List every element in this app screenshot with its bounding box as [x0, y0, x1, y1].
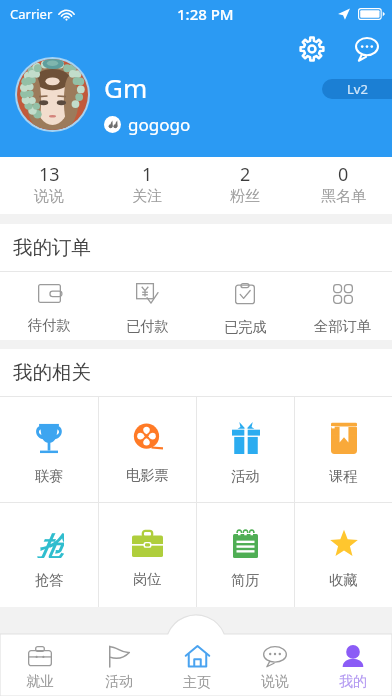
button[interactable]: 2	[196, 157, 294, 214]
button[interactable]: 抢	[0, 503, 98, 607]
staticText: 就业	[26, 673, 54, 691]
button[interactable]: Messages	[346, 28, 388, 70]
staticText: 活动	[105, 673, 133, 691]
button[interactable]: 主页	[158, 634, 236, 696]
button[interactable]: 待付款	[0, 272, 98, 340]
staticText: 说说	[261, 673, 289, 691]
staticText: 我的相关	[13, 360, 91, 385]
staticText: 已付款	[126, 317, 169, 335]
button[interactable]: 联赛	[0, 397, 98, 502]
staticText: 1:28 PM	[177, 4, 234, 24]
staticText: Gm	[104, 70, 148, 105]
staticText: 关注	[132, 187, 162, 206]
staticText: 主页	[183, 674, 211, 692]
staticText: 1	[142, 162, 153, 187]
staticText: 13	[39, 162, 60, 187]
button[interactable]: 活动	[197, 397, 294, 502]
staticText: 简历	[231, 571, 260, 589]
button[interactable]: 0	[294, 157, 392, 214]
staticText: 岗位	[133, 570, 162, 588]
button[interactable]: 就业	[0, 634, 79, 696]
staticText: 说说	[34, 187, 64, 206]
staticText: 课程	[329, 467, 358, 485]
staticText: 已完成	[224, 318, 267, 336]
button[interactable]: 电影票	[99, 397, 196, 502]
staticText: Carrier	[10, 5, 53, 23]
button[interactable]: Lv2	[322, 79, 392, 99]
staticText: Lv2	[347, 80, 368, 98]
button[interactable]: 活动	[79, 634, 158, 696]
staticText: 抢答	[35, 571, 64, 589]
staticText: 活动	[231, 467, 260, 485]
button[interactable]: 岗位	[99, 503, 196, 607]
button[interactable]: 13	[0, 157, 98, 214]
staticText: 我的	[339, 673, 367, 691]
staticText: 粉丝	[230, 187, 260, 206]
staticText: 黑名单	[321, 187, 366, 206]
staticText: 电影票	[126, 466, 169, 484]
button[interactable]: Settings	[291, 28, 333, 70]
staticText: 全部订单	[314, 317, 372, 335]
staticText: 我的订单	[13, 235, 91, 260]
button[interactable]: 课程	[295, 397, 392, 502]
button[interactable]: 1	[98, 157, 196, 214]
button[interactable]: 收藏	[295, 503, 392, 607]
staticText: 抢	[37, 530, 64, 558]
staticText: 0	[338, 162, 349, 187]
button[interactable]: 我的	[314, 634, 392, 696]
button[interactable]: 已付款	[98, 272, 196, 340]
button[interactable]: 简历	[197, 503, 294, 607]
staticText: 待付款	[28, 316, 71, 334]
button[interactable]: 全部订单	[294, 272, 392, 340]
staticText: 收藏	[329, 571, 358, 589]
staticText: 联赛	[35, 467, 64, 485]
button[interactable]: Profile photo	[15, 57, 90, 132]
button[interactable]: 说说	[236, 634, 314, 696]
staticText: 2	[240, 162, 251, 187]
staticText: gogogo	[128, 113, 191, 136]
button[interactable]: 已完成	[196, 272, 294, 340]
